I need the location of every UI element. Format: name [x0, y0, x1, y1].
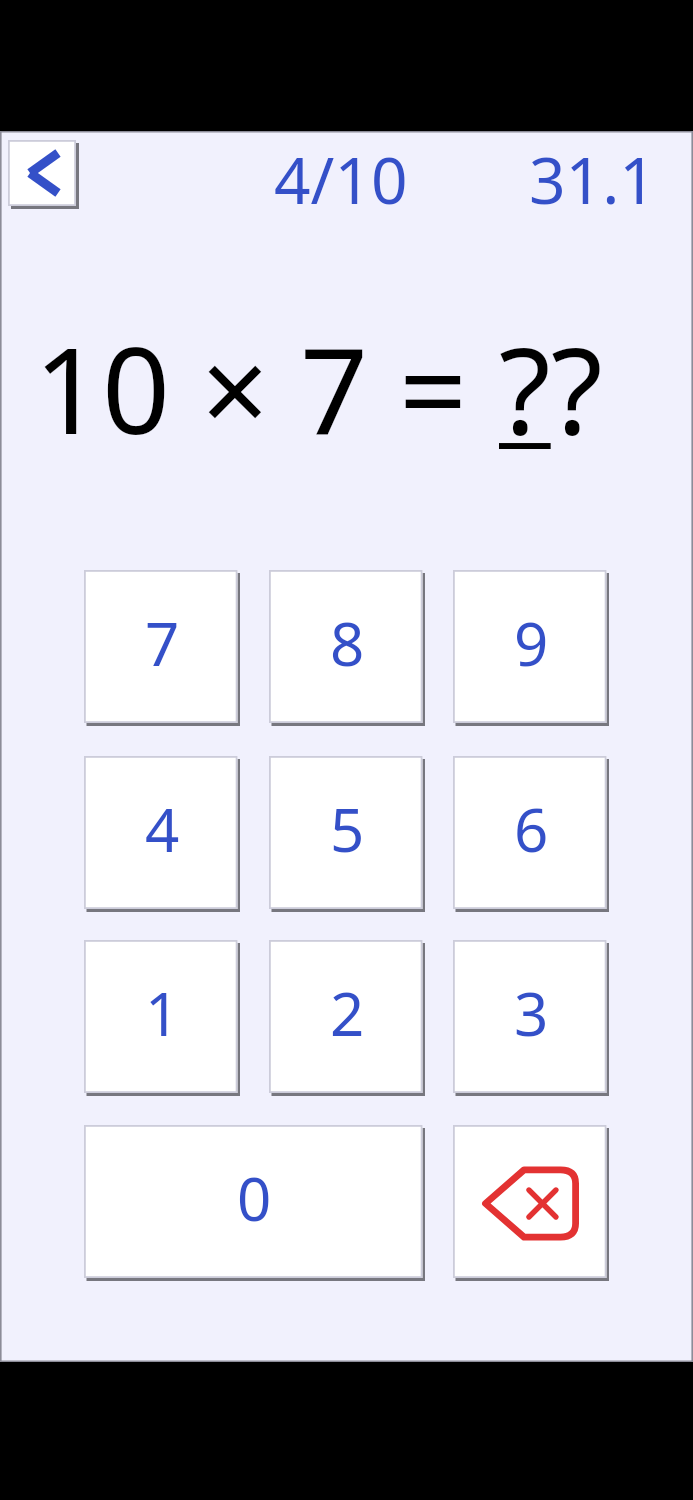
staticText: 1 [145, 972, 180, 1054]
button[interactable]: 2 [269, 940, 425, 1096]
button[interactable]: 1 [84, 940, 240, 1096]
button[interactable]: 9 [453, 570, 609, 726]
staticText: 8 [330, 602, 365, 684]
staticText: 3 [514, 972, 549, 1054]
staticText: 9 [514, 602, 549, 684]
button[interactable]: 7 [84, 570, 240, 726]
button[interactable]: Back [8, 140, 79, 209]
staticText: 7 [145, 602, 180, 684]
staticText: 4/10 [274, 136, 408, 223]
button[interactable]: 8 [269, 570, 425, 726]
staticText: 10 × 7 = [34, 307, 499, 469]
button[interactable]: 5 [269, 756, 425, 912]
staticText: 0 [237, 1157, 272, 1239]
button[interactable]: Backspace [453, 1125, 609, 1281]
button[interactable]: 6 [453, 756, 609, 912]
staticText: 6 [514, 788, 549, 870]
staticText: 2 [330, 972, 365, 1054]
button[interactable]: 3 [453, 940, 609, 1096]
staticText: ? [551, 307, 603, 469]
button[interactable]: 0 [84, 1125, 425, 1281]
staticText: 5 [330, 788, 365, 870]
staticText: 31.1 [529, 136, 656, 223]
staticText: 4 [145, 788, 180, 870]
staticText: ? [499, 307, 551, 469]
button[interactable]: 4 [84, 756, 240, 912]
